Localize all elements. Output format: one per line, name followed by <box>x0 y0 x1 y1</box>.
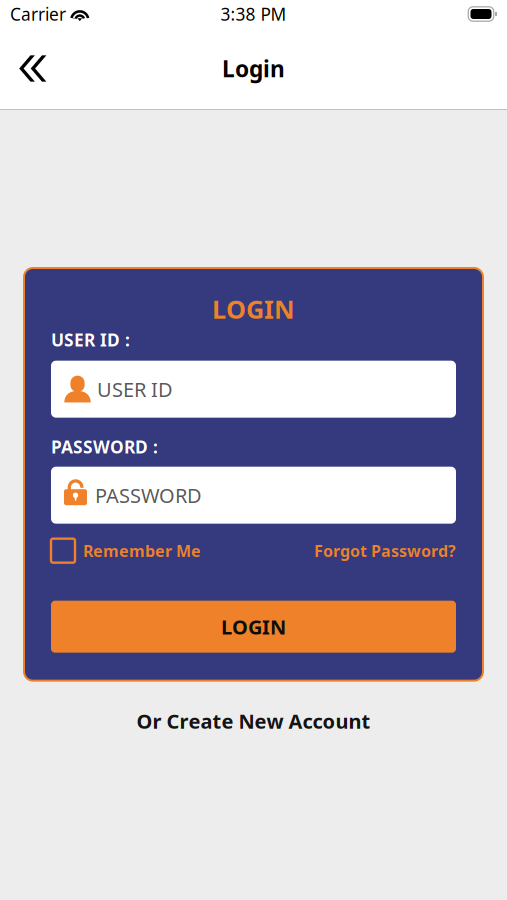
button[interactable]: LOGIN <box>51 601 456 653</box>
staticText: USER ID : <box>51 328 130 351</box>
button[interactable]: Remember Me <box>51 539 201 563</box>
button[interactable]: Forgot Password? <box>314 540 456 561</box>
staticText: 3:38 PM <box>220 2 286 25</box>
staticText: Login <box>222 53 285 83</box>
button[interactable]: Back <box>0 41 64 95</box>
staticText: Carrier <box>10 2 66 25</box>
staticText: Remember Me <box>83 540 201 561</box>
staticText: Or Create New Account <box>136 708 370 734</box>
staticText: USER ID <box>97 376 173 402</box>
staticText: LOGIN <box>212 292 295 326</box>
staticText: LOGIN <box>221 613 286 640</box>
staticText: PASSWORD <box>95 482 202 508</box>
staticText: Forgot Password? <box>314 540 456 561</box>
staticText: PASSWORD : <box>51 435 158 458</box>
